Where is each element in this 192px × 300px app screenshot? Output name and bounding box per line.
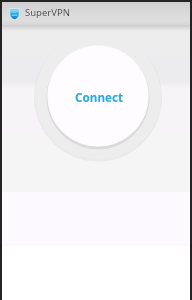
staticText: Connect — [75, 89, 124, 105]
staticText: SuperVPN — [25, 6, 70, 19]
button[interactable]: Connect — [34, 32, 162, 160]
